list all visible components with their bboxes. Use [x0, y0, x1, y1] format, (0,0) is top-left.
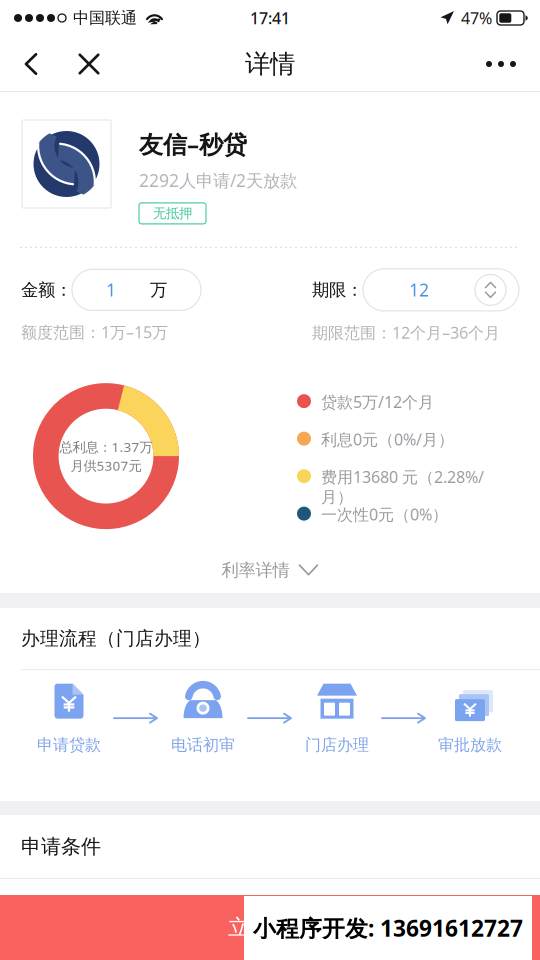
staticText: 2292人申请/2天放款 [139, 169, 297, 192]
staticText: 额度范围：1万–15万 [21, 321, 168, 343]
button[interactable]: 立即申请 [0, 895, 540, 960]
button[interactable]: 1 [72, 269, 201, 310]
staticText: 利息0元（0%/月） [321, 429, 454, 450]
staticText: 门店办理 [305, 735, 369, 755]
button[interactable]: Close [60, 36, 118, 91]
staticText: 电话初审 [171, 735, 235, 755]
staticText: 无抵押 [153, 205, 192, 222]
staticText: 利率详情 [221, 559, 289, 581]
button[interactable]: Back [2, 36, 60, 91]
staticText: 中国联通 [73, 8, 137, 28]
button[interactable]: 利率详情 [0, 551, 540, 589]
staticText: 详情 [245, 48, 295, 79]
staticText: 一次性0元（0%） [321, 504, 448, 525]
staticText: 小程序开发: 13691612727 [253, 913, 523, 943]
staticText: 17:41 [250, 7, 290, 29]
staticText: 月供5307元 [70, 457, 141, 474]
staticText: 费用13680 元（2.28%/月） [321, 466, 484, 507]
staticText: 审批放款 [438, 735, 502, 755]
button[interactable]: 12 [363, 269, 519, 311]
staticText: 万 [150, 279, 167, 300]
staticText: 期限： [312, 279, 363, 300]
staticText: 期限范围：12个月–36个月 [312, 322, 500, 343]
staticText: 12 [409, 278, 429, 301]
staticText: 47% [461, 7, 492, 29]
staticText: 申请贷款 [37, 735, 101, 755]
staticText: 金额： [21, 279, 72, 300]
staticText: 申请条件 [21, 834, 101, 859]
staticText: 办理流程（门店办理） [21, 627, 211, 650]
staticText: 友信–秒贷 [139, 128, 247, 160]
button[interactable]: More [470, 36, 532, 91]
staticText: 立即申请 [228, 914, 312, 941]
staticText: 贷款5万/12个月 [321, 391, 434, 412]
staticText: 总利息：1.37万 [59, 438, 152, 456]
staticText: 1 [106, 278, 116, 301]
